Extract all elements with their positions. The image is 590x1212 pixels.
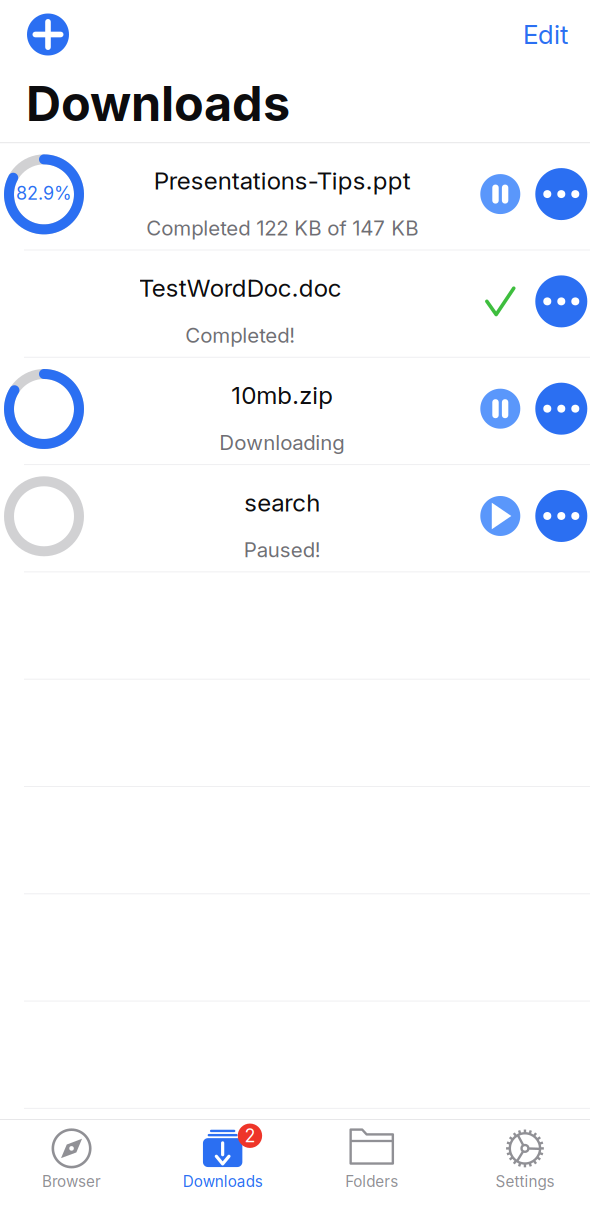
- staticText: 10mb.zip: [231, 381, 333, 410]
- button[interactable]: 10mb.zip: [0, 358, 590, 465]
- button[interactable]: search: [0, 465, 590, 572]
- button[interactable]: Folders: [295, 1120, 442, 1191]
- staticText: Browser: [42, 1172, 101, 1191]
- staticText: Settings: [495, 1172, 554, 1191]
- staticText: Folders: [345, 1172, 398, 1191]
- button[interactable]: Pause: [480, 389, 520, 429]
- button[interactable]: Edit: [523, 19, 568, 50]
- staticText: Downloading: [219, 430, 345, 455]
- button[interactable]: TestWordDoc.doc: [0, 250, 590, 358]
- button[interactable]: More actions: [535, 490, 587, 542]
- staticText: Downloads: [26, 74, 290, 133]
- staticText: Paused!: [244, 537, 321, 562]
- staticText: Downloads: [183, 1172, 263, 1191]
- staticText: 2: [244, 1125, 255, 1147]
- staticText: Presentations-Tips.ppt: [154, 166, 411, 195]
- staticText: Completed 122 KB of 147 KB: [146, 216, 418, 240]
- staticText: 82.9%: [16, 182, 72, 204]
- button[interactable]: 2: [147, 1120, 295, 1191]
- staticText: Edit: [523, 19, 568, 50]
- button[interactable]: Browser: [0, 1120, 147, 1191]
- button[interactable]: Settings: [442, 1120, 590, 1191]
- staticText: TestWordDoc.doc: [139, 273, 342, 303]
- button[interactable]: 82.9%: [0, 143, 590, 250]
- button[interactable]: Pause: [480, 174, 520, 214]
- staticText: Completed!: [185, 323, 295, 348]
- button[interactable]: Resume: [480, 496, 520, 536]
- staticText: search: [244, 488, 320, 517]
- button[interactable]: More actions: [535, 383, 587, 435]
- button[interactable]: More actions: [535, 168, 587, 220]
- button[interactable]: More actions: [535, 275, 587, 327]
- button[interactable]: Add download: [27, 13, 69, 55]
